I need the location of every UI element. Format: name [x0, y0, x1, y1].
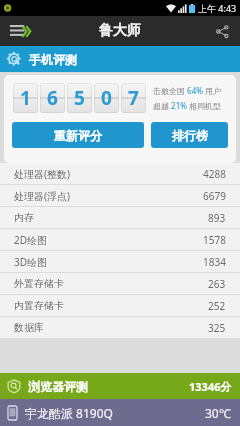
staticText: 数据库	[14, 321, 44, 334]
staticText: 5	[74, 85, 85, 111]
staticText: 6	[47, 85, 58, 111]
staticText: 鲁大师	[99, 22, 141, 40]
button[interactable]: 排行榜	[151, 122, 228, 148]
staticText: 1	[20, 85, 31, 111]
staticText: 重新评分	[54, 128, 102, 143]
staticText: 1578	[203, 233, 226, 247]
staticText: 30℃	[205, 405, 231, 421]
staticText: 1834	[203, 255, 226, 269]
button[interactable]: 处理器(浮点)	[0, 185, 240, 206]
staticText: 2D绘图	[14, 233, 48, 247]
staticText: 处理器(整数)	[14, 167, 70, 181]
staticText: 手机评测	[29, 52, 77, 67]
staticText: 4288	[203, 167, 226, 181]
button[interactable]: 内置存储卡	[0, 295, 240, 316]
staticText: 13346分	[189, 379, 232, 394]
staticText: 252	[208, 299, 226, 313]
button[interactable]: Share	[204, 16, 240, 46]
button[interactable]: 外置存储卡	[0, 273, 240, 294]
staticText: 7	[128, 85, 139, 111]
button[interactable]: 重新评分	[12, 122, 144, 148]
staticText: 6679	[203, 189, 226, 203]
staticText: 0	[101, 85, 112, 111]
staticText: 外置存储卡	[14, 277, 64, 290]
staticText: 内存	[14, 211, 34, 224]
staticText: 3D绘图	[14, 255, 48, 269]
button[interactable]: Menu	[0, 16, 40, 46]
button[interactable]: 数据库	[0, 317, 240, 338]
staticText: 上午 4:43	[198, 2, 237, 14]
button[interactable]: 2D绘图	[0, 229, 240, 250]
staticText: 超越 21% 相同机型	[153, 100, 221, 111]
button[interactable]: 浏览器评测	[0, 373, 240, 399]
button[interactable]: 手机评测	[0, 46, 240, 72]
staticText: 排行榜	[172, 128, 208, 143]
staticText: 263	[208, 277, 226, 291]
staticText: 击败全国 64% 用户	[153, 85, 221, 96]
staticText: 处理器(浮点)	[14, 189, 70, 203]
button[interactable]: 处理器(整数)	[0, 163, 240, 184]
button[interactable]: 3D绘图	[0, 251, 240, 272]
staticText: 浏览器评测	[28, 379, 88, 394]
staticText: 893	[208, 211, 226, 225]
button[interactable]: 内存	[0, 207, 240, 228]
button[interactable]: 宇龙酷派 8190Q	[0, 399, 240, 426]
staticText: 325	[208, 321, 226, 335]
staticText: 内置存储卡	[14, 299, 64, 312]
staticText: 宇龙酷派 8190Q	[25, 405, 113, 421]
